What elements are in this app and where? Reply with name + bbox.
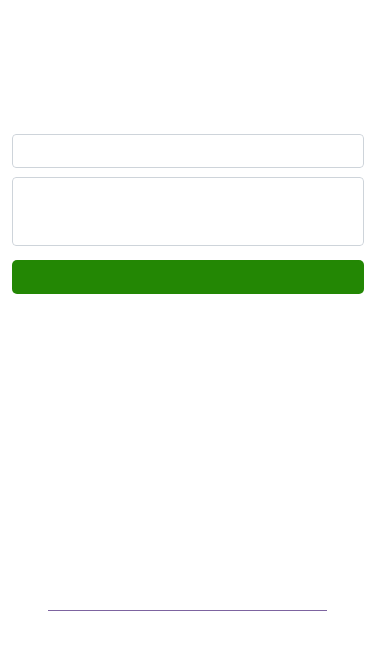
button[interactable]: Link	[48, 597, 327, 611]
button[interactable]: Submit	[12, 260, 364, 294]
button[interactable]: Text input	[12, 134, 364, 168]
button[interactable]: Message text area	[12, 177, 364, 246]
